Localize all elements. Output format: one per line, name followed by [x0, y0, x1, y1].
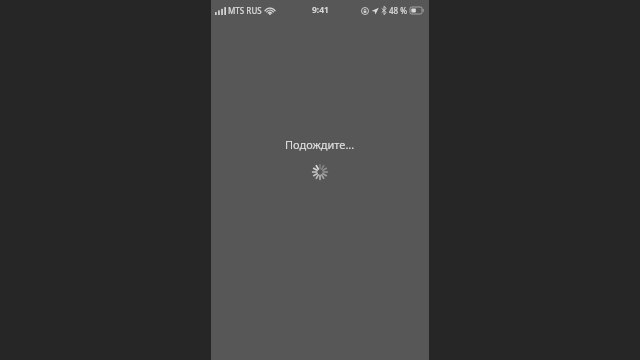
staticText: MTS RUS — [228, 5, 262, 16]
staticText: 48 % — [389, 5, 408, 16]
staticText: Подождите... — [285, 137, 355, 152]
staticText: 9:41 — [312, 4, 329, 16]
other: Loading — [312, 164, 328, 180]
